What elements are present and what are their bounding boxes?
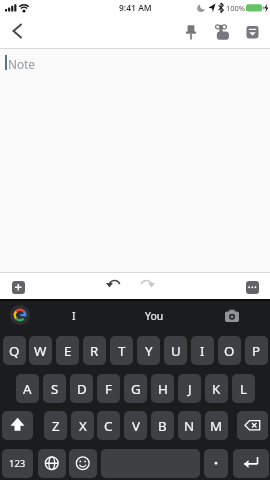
- button[interactable]: B: [151, 411, 174, 440]
- button[interactable]: 123: [2, 449, 33, 478]
- button[interactable]: [244, 24, 262, 42]
- staticText: S: [51, 380, 59, 398]
- staticText: X: [79, 417, 87, 435]
- button[interactable]: I: [59, 306, 89, 326]
- button[interactable]: K: [205, 374, 228, 403]
- staticText: G: [131, 380, 141, 398]
- button[interactable]: W: [29, 336, 52, 365]
- staticText: You: [145, 309, 164, 323]
- button[interactable]: C: [97, 411, 120, 440]
- staticText: N: [184, 417, 195, 435]
- staticText: A: [23, 380, 32, 398]
- button[interactable]: E: [56, 336, 79, 365]
- staticText: W: [34, 342, 47, 360]
- staticText: U: [171, 342, 181, 360]
- button[interactable]: F: [97, 374, 120, 403]
- staticText: H: [158, 380, 168, 398]
- button[interactable]: [214, 24, 232, 42]
- staticText: Note: [8, 56, 36, 72]
- button[interactable]: [10, 305, 30, 325]
- button[interactable]: [182, 24, 200, 42]
- staticText: D: [77, 380, 87, 398]
- button[interactable]: P: [245, 336, 268, 365]
- button[interactable]: T: [110, 336, 133, 365]
- button[interactable]: Q: [3, 336, 26, 365]
- staticText: F: [105, 380, 112, 398]
- staticText: I: [72, 309, 76, 323]
- staticText: 9:41 AM: [119, 2, 152, 14]
- button[interactable]: [237, 411, 268, 440]
- staticText: C: [104, 417, 113, 435]
- button[interactable]: M: [205, 411, 228, 440]
- button[interactable]: V: [124, 411, 147, 440]
- staticText: R: [90, 342, 99, 360]
- button[interactable]: [136, 276, 156, 293]
- button[interactable]: [223, 309, 241, 324]
- button[interactable]: [38, 449, 66, 478]
- button[interactable]: A: [16, 374, 39, 403]
- button[interactable]: Z: [44, 411, 67, 440]
- button[interactable]: N: [178, 411, 201, 440]
- staticText: Y: [145, 342, 153, 360]
- button[interactable]: Y: [137, 336, 160, 365]
- staticText: L: [240, 380, 247, 398]
- button[interactable]: J: [178, 374, 201, 403]
- button[interactable]: S: [43, 374, 66, 403]
- button[interactable]: You: [138, 306, 170, 326]
- button[interactable]: I: [191, 336, 214, 365]
- staticText: J: [188, 380, 192, 398]
- staticText: Q: [9, 342, 20, 360]
- staticText: E: [64, 342, 72, 360]
- button[interactable]: [2, 411, 33, 440]
- button[interactable]: [12, 281, 25, 294]
- button[interactable]: R: [83, 336, 106, 365]
- button[interactable]: X: [71, 411, 94, 440]
- button[interactable]: [233, 449, 269, 478]
- staticText: I: [200, 342, 205, 360]
- button[interactable]: O: [218, 336, 241, 365]
- staticText: K: [212, 380, 221, 398]
- staticText: V: [132, 417, 140, 435]
- button[interactable]: D: [70, 374, 93, 403]
- button[interactable]: [204, 449, 228, 478]
- button[interactable]: H: [151, 374, 174, 403]
- staticText: Z: [52, 417, 60, 435]
- staticText: P: [252, 342, 261, 360]
- button[interactable]: [105, 276, 125, 293]
- staticText: T: [118, 342, 126, 360]
- staticText: 123: [9, 457, 26, 470]
- button[interactable]: L: [232, 374, 255, 403]
- staticText: O: [224, 342, 235, 360]
- button[interactable]: G: [124, 374, 147, 403]
- button[interactable]: U: [164, 336, 187, 365]
- button[interactable]: [69, 449, 97, 478]
- button[interactable]: [246, 281, 259, 294]
- staticText: B: [158, 417, 167, 435]
- staticText: M: [210, 417, 223, 435]
- button[interactable]: [5, 18, 31, 44]
- staticText: 100%: [226, 3, 246, 13]
